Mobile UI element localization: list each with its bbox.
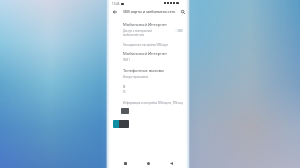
button[interactable]: Back [110, 7, 119, 16]
button[interactable]: SIM card 2 [113, 120, 129, 128]
staticText: Мобильный Интернет [123, 22, 167, 28]
staticText: Расширенные настройки SIM-карт [123, 43, 168, 47]
button[interactable]: SIM card 1 [121, 108, 129, 114]
staticText: Доступ к электронной мобильной сети [123, 29, 152, 36]
button[interactable]: Back [166, 158, 176, 168]
staticText: S [123, 84, 126, 90]
staticText: Мобильный Интернет [123, 51, 167, 57]
button[interactable]: Recent apps [120, 158, 130, 168]
button[interactable]: Search [178, 7, 187, 16]
staticText: SIM 1 [123, 58, 131, 62]
button[interactable]: Home [143, 158, 153, 168]
staticText: SI [123, 90, 126, 94]
staticText: Информация и настройки SIM-карты, PIN-ко… [123, 101, 183, 105]
staticText: Всегда спрашивать [123, 75, 149, 79]
staticText: SIM-карты и мобильная сеть [123, 9, 176, 14]
button[interactable]: Mobile internet switch [175, 28, 182, 32]
staticText: 13:46 [112, 2, 120, 6]
staticText: Телефонные вызовы [123, 68, 165, 74]
